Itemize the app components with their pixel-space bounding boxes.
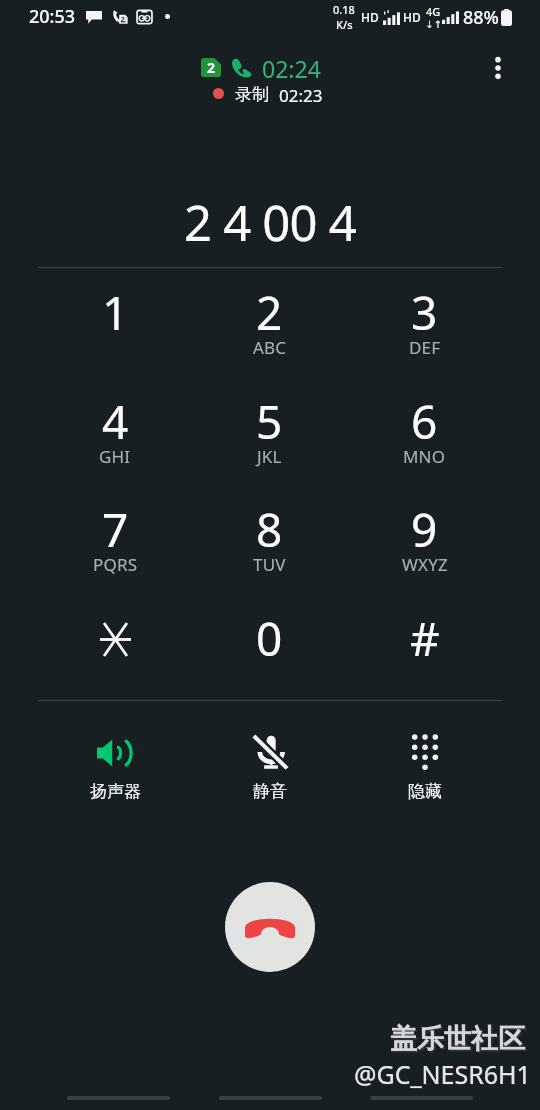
staticText: 静音 [253,781,287,802]
staticText: 盖乐世社区 [390,1022,525,1056]
staticText: ↓↑ [425,19,442,31]
staticText: 7 [102,498,129,561]
button[interactable]: 隐藏 [347,734,502,824]
staticText: 20:53 [29,4,76,29]
button[interactable]: 2 [192,281,347,389]
staticText: 3 [411,281,438,344]
button[interactable]: 静音 [192,734,347,824]
staticText: @GC_NESR6H1 [354,1057,531,1091]
staticText: JKL [257,445,282,468]
staticText: TUV [253,553,286,576]
staticText: 88% [463,5,499,30]
staticText: WXYZ [402,553,448,576]
staticText: 02:24 [262,53,321,84]
staticText: 录制 [235,84,269,105]
staticText: 4 [102,390,129,453]
staticText: DEF [409,336,441,359]
staticText: MNO [403,445,446,468]
button[interactable]: 7 [38,498,192,606]
staticText: # [410,607,440,670]
button[interactable] [38,607,192,715]
staticText: HD [403,9,421,25]
button[interactable]: 4 [38,390,192,498]
staticText: 2 [256,281,283,344]
staticText: 9 [411,498,438,561]
button[interactable]: 5 [192,390,347,498]
button[interactable]: 9 [347,498,502,606]
staticText: 6 [411,390,438,453]
staticText: GHI [99,445,131,468]
staticText: 2 4 00 4 [184,189,356,249]
staticText: 0 [256,607,283,670]
button[interactable]: 6 [347,390,502,498]
staticText: 0.18 [333,2,355,17]
staticText: 8 [256,498,283,561]
staticText: ABC [253,336,287,359]
staticText: K/s [336,17,353,32]
staticText: @GC_NESR6H1 [355,1058,532,1092]
button[interactable]: End call [225,882,315,972]
button[interactable]: 8 [192,498,347,606]
staticText: 4G [426,4,441,19]
button[interactable]: 扬声器 [38,734,192,824]
button[interactable]: More options [478,48,518,88]
button[interactable]: 3 [347,281,502,389]
staticText: HD [361,9,379,25]
button[interactable]: 0 [192,607,347,715]
staticText: 1 [102,281,129,344]
staticText: 02:23 [279,84,323,107]
staticText: 2 [207,58,216,77]
staticText: 隐藏 [408,781,442,802]
button[interactable]: # [347,607,502,715]
staticText: 盖乐世社区 [392,1024,527,1058]
staticText: 扬声器 [90,781,141,802]
button[interactable]: 1 [38,281,192,389]
staticText: PQRS [93,553,138,576]
staticText: 5 [256,390,283,453]
